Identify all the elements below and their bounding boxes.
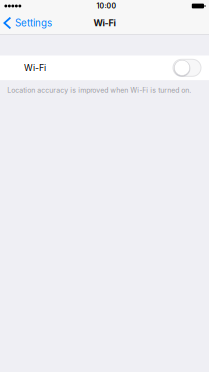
staticText: Settings: [15, 17, 52, 29]
staticText: Wi-Fi: [24, 62, 46, 73]
button[interactable]: Wi-Fi: [173, 59, 201, 76]
staticText: Wi-Fi: [93, 17, 115, 28]
staticText: 10:00: [97, 2, 117, 10]
button[interactable]: Settings: [0, 12, 62, 34]
staticText: Location accuracy is improved when Wi-Fi…: [7, 86, 191, 94]
